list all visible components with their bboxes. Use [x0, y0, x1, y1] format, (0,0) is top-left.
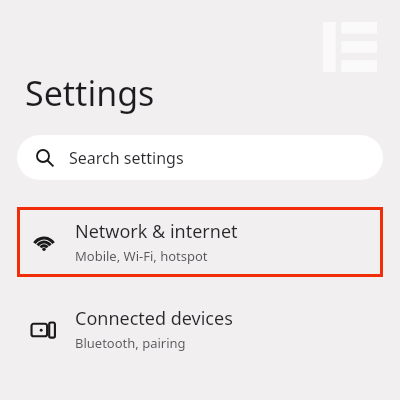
- other: Connected devices: [31, 316, 57, 342]
- other: Elementor logo: [323, 22, 377, 72]
- staticText: Bluetooth, pairing: [75, 334, 186, 352]
- staticText: Settings: [25, 70, 155, 116]
- staticText: Search settings: [69, 147, 184, 169]
- button[interactable]: Connected devices: [17, 297, 383, 361]
- staticText: Network & internet: [75, 219, 238, 244]
- staticText: Mobile, Wi-Fi, hotspot: [75, 247, 208, 265]
- button[interactable]: Network and internet: [17, 207, 383, 277]
- staticText: Connected devices: [75, 306, 233, 331]
- other: Search: [35, 148, 55, 168]
- button[interactable]: Search: [17, 135, 383, 180]
- other: Network and internet: [31, 229, 57, 255]
